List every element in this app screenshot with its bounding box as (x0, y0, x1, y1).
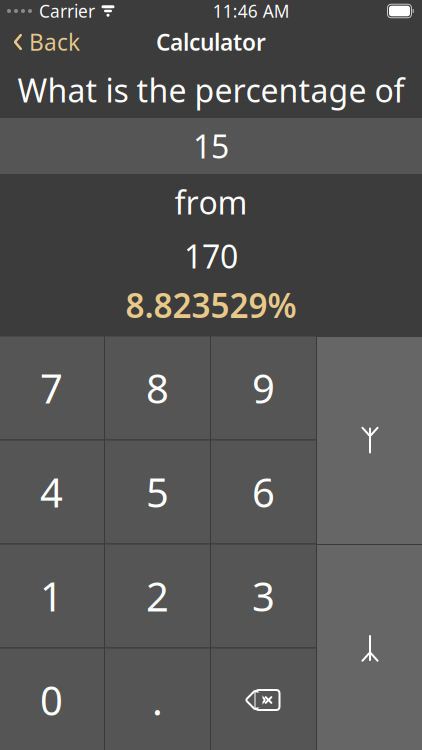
button[interactable]: 2 (105, 544, 210, 647)
button[interactable]: Previous field (317, 337, 422, 544)
button[interactable]: Back (0, 21, 80, 63)
button[interactable]: 5 (105, 440, 210, 543)
staticText: 6 (252, 465, 275, 518)
staticText: Calculator (156, 27, 266, 57)
staticText: 8.823529% (125, 283, 296, 327)
staticText: What is the percentage of (17, 69, 404, 111)
button[interactable]: . (105, 648, 210, 750)
staticText: Carrier (39, 0, 95, 22)
button[interactable]: Next field (317, 545, 422, 750)
staticText: 11:46 AM (213, 0, 290, 22)
staticText: 9 (252, 361, 275, 414)
staticText: from (174, 181, 247, 223)
button[interactable]: 3 (211, 544, 316, 647)
staticText: 15 (193, 125, 229, 167)
button[interactable]: 7 (0, 336, 104, 439)
button[interactable]: 6 (211, 440, 316, 543)
staticText: 0 (40, 673, 63, 726)
button[interactable]: 4 (0, 440, 104, 543)
button[interactable]: 0 (0, 648, 104, 750)
staticText: 4 (40, 465, 63, 518)
staticText: 3 (252, 569, 275, 622)
button[interactable]: 15 (0, 118, 422, 174)
staticText: Back (29, 27, 80, 57)
button[interactable]: 1 (0, 544, 104, 647)
staticText: 5 (146, 465, 169, 518)
staticText: 7 (40, 361, 63, 414)
button[interactable]: 8 (105, 336, 210, 439)
staticText: . (152, 673, 163, 726)
button[interactable]: Delete (211, 648, 316, 750)
button[interactable]: 9 (211, 336, 316, 439)
staticText: 2 (146, 569, 169, 622)
button[interactable]: 170 (0, 230, 422, 282)
staticText: 8 (146, 361, 169, 414)
staticText: 170 (184, 235, 238, 277)
staticText: 1 (40, 569, 63, 622)
